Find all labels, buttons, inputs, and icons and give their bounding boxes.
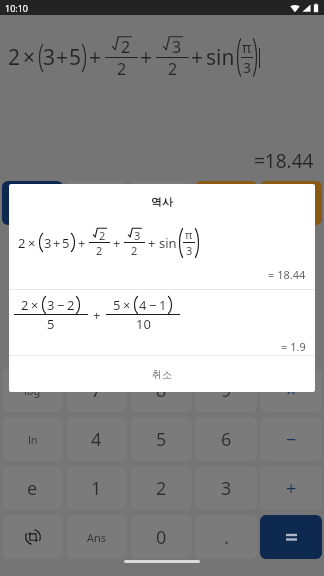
staticText: 3 bbox=[243, 58, 252, 77]
button[interactable]: 4 bbox=[66, 417, 127, 461]
staticText: × bbox=[28, 234, 36, 252]
button[interactable]: × bbox=[260, 368, 322, 412]
staticText: + bbox=[56, 43, 69, 72]
staticText: = 1.9 bbox=[281, 339, 306, 354]
staticText: 10 bbox=[136, 315, 151, 333]
staticText: 2 bbox=[121, 36, 131, 58]
staticText: 2 bbox=[99, 228, 106, 243]
staticText: 7 bbox=[91, 378, 102, 403]
staticText: 4 bbox=[139, 296, 147, 314]
staticText: × bbox=[31, 296, 39, 314]
button[interactable]: − bbox=[260, 417, 322, 461]
button[interactable]: 2 bbox=[130, 466, 192, 510]
other: Wi-Fi bbox=[290, 3, 300, 13]
button[interactable]: 취소 bbox=[9, 356, 315, 392]
staticText: + bbox=[78, 234, 86, 252]
staticText: × bbox=[23, 43, 36, 72]
staticText: 1 bbox=[91, 476, 102, 501]
staticText: 3 bbox=[44, 234, 52, 252]
staticText: 2 bbox=[168, 58, 178, 80]
staticText: Ans bbox=[87, 530, 107, 545]
staticText: 1 bbox=[159, 296, 167, 314]
staticText: . bbox=[224, 525, 229, 550]
staticText: 8 bbox=[156, 378, 167, 403]
staticText: sin bbox=[206, 43, 235, 72]
staticText: 3 bbox=[186, 243, 193, 258]
staticText: 3 bbox=[134, 228, 141, 243]
button[interactable]: ln bbox=[2, 417, 63, 461]
staticText: 5 bbox=[47, 315, 55, 333]
staticText: + bbox=[93, 306, 101, 324]
staticText: 5 bbox=[62, 234, 70, 252]
staticText: 2 bbox=[8, 43, 21, 72]
staticText: 2 bbox=[96, 243, 103, 258]
staticText: 2 bbox=[131, 243, 138, 258]
button[interactable]: 3 bbox=[195, 466, 257, 510]
staticText: + bbox=[148, 234, 156, 252]
staticText: =18.44 bbox=[254, 148, 314, 174]
other: Mobile signal bbox=[302, 3, 311, 13]
staticText: 5 bbox=[113, 296, 121, 314]
other: Rotate screen bbox=[25, 529, 41, 545]
button[interactable]: 7 bbox=[66, 368, 127, 412]
button[interactable]: 2 bbox=[9, 290, 315, 355]
staticText: π bbox=[185, 227, 193, 242]
staticText: 3 bbox=[221, 476, 232, 501]
staticText: − bbox=[286, 427, 297, 452]
staticText: − bbox=[57, 296, 65, 314]
other: Battery bbox=[313, 3, 319, 13]
staticText: 10:10 bbox=[5, 2, 29, 14]
button[interactable]: 9 bbox=[195, 368, 257, 412]
staticText: + bbox=[191, 43, 204, 72]
button[interactable]: e bbox=[2, 466, 63, 510]
staticText: 취소 bbox=[152, 368, 172, 381]
button[interactable]: 2 bbox=[9, 219, 315, 288]
staticText: 2 bbox=[18, 234, 26, 252]
staticText: + bbox=[89, 43, 102, 72]
staticText: 9 bbox=[221, 378, 232, 403]
button[interactable]: 5 bbox=[130, 417, 192, 461]
staticText: ln bbox=[28, 432, 38, 447]
staticText: 3 bbox=[172, 36, 182, 58]
staticText: = 18.44 bbox=[268, 267, 306, 282]
staticText: 5 bbox=[69, 43, 82, 72]
staticText: 6 bbox=[221, 427, 232, 452]
staticText: − bbox=[149, 296, 157, 314]
button[interactable]: log bbox=[2, 368, 63, 412]
staticText: sin bbox=[159, 234, 177, 252]
staticText: 역사 bbox=[151, 195, 173, 209]
staticText: 4 bbox=[91, 427, 102, 452]
staticText: 5 bbox=[156, 427, 167, 452]
staticText: e bbox=[27, 476, 38, 501]
staticText: log bbox=[24, 383, 41, 398]
staticText: 2 bbox=[117, 58, 127, 80]
staticText: + bbox=[53, 234, 61, 252]
staticText: 3 bbox=[47, 296, 55, 314]
button[interactable]: 1 bbox=[66, 466, 127, 510]
staticText: + bbox=[286, 476, 297, 501]
button[interactable]: Rotate screen bbox=[2, 515, 63, 559]
staticText: 3 bbox=[43, 43, 56, 72]
staticText: 2 bbox=[67, 296, 75, 314]
button[interactable]: + bbox=[260, 466, 322, 510]
button[interactable] bbox=[260, 515, 322, 559]
staticText: 2 bbox=[21, 296, 29, 314]
button[interactable]: Ans bbox=[66, 515, 127, 559]
staticText: 2 bbox=[156, 476, 167, 501]
staticText: × bbox=[123, 296, 131, 314]
button[interactable]: 6 bbox=[195, 417, 257, 461]
button[interactable]: 8 bbox=[130, 368, 192, 412]
staticText: + bbox=[140, 43, 153, 72]
staticText: 0 bbox=[156, 525, 167, 550]
button[interactable]: 0 bbox=[130, 515, 192, 559]
staticText: + bbox=[113, 234, 121, 252]
staticText: × bbox=[286, 378, 297, 403]
staticText: π bbox=[242, 38, 252, 57]
